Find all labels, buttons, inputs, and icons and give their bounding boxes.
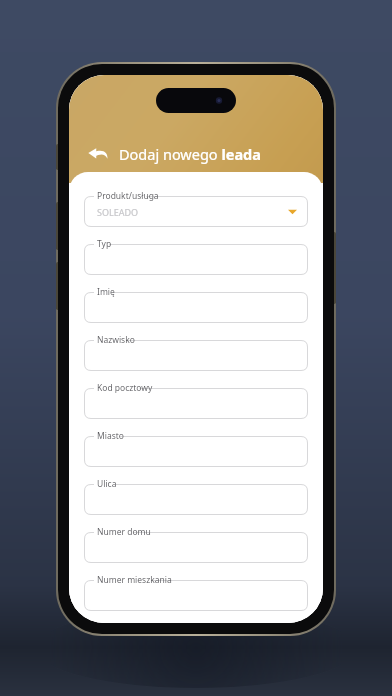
staticText: Miasto [97,430,124,442]
staticText: Typ [97,238,112,250]
button[interactable]: Numer mieszkania [84,573,308,611]
button[interactable]: Wstecz [83,139,113,169]
button[interactable]: Imię [84,285,308,323]
button[interactable]: Numer telefonu [84,621,308,623]
staticText: SOLEADO [97,206,139,218]
button[interactable]: Typ [84,237,308,275]
staticText: Dodaj nowego leada [119,144,261,164]
button[interactable]: Kod pocztowy [84,381,308,419]
button[interactable]: Nazwisko [84,333,308,371]
button[interactable]: Produkt/usługa [84,189,308,227]
button[interactable]: Numer domu [84,525,308,563]
staticText: Kod pocztowy [97,382,153,394]
staticText: Imię [97,286,115,298]
button[interactable]: Miasto [84,429,308,467]
staticText: Produkt/usługa [97,190,159,202]
button[interactable]: Ulica [84,477,308,515]
staticText: Numer mieszkania [97,574,172,586]
staticText: Numer telefonu [97,622,161,623]
staticText: Numer domu [97,526,151,538]
staticText: Ulica [97,478,117,490]
staticText: Nazwisko [97,334,135,346]
